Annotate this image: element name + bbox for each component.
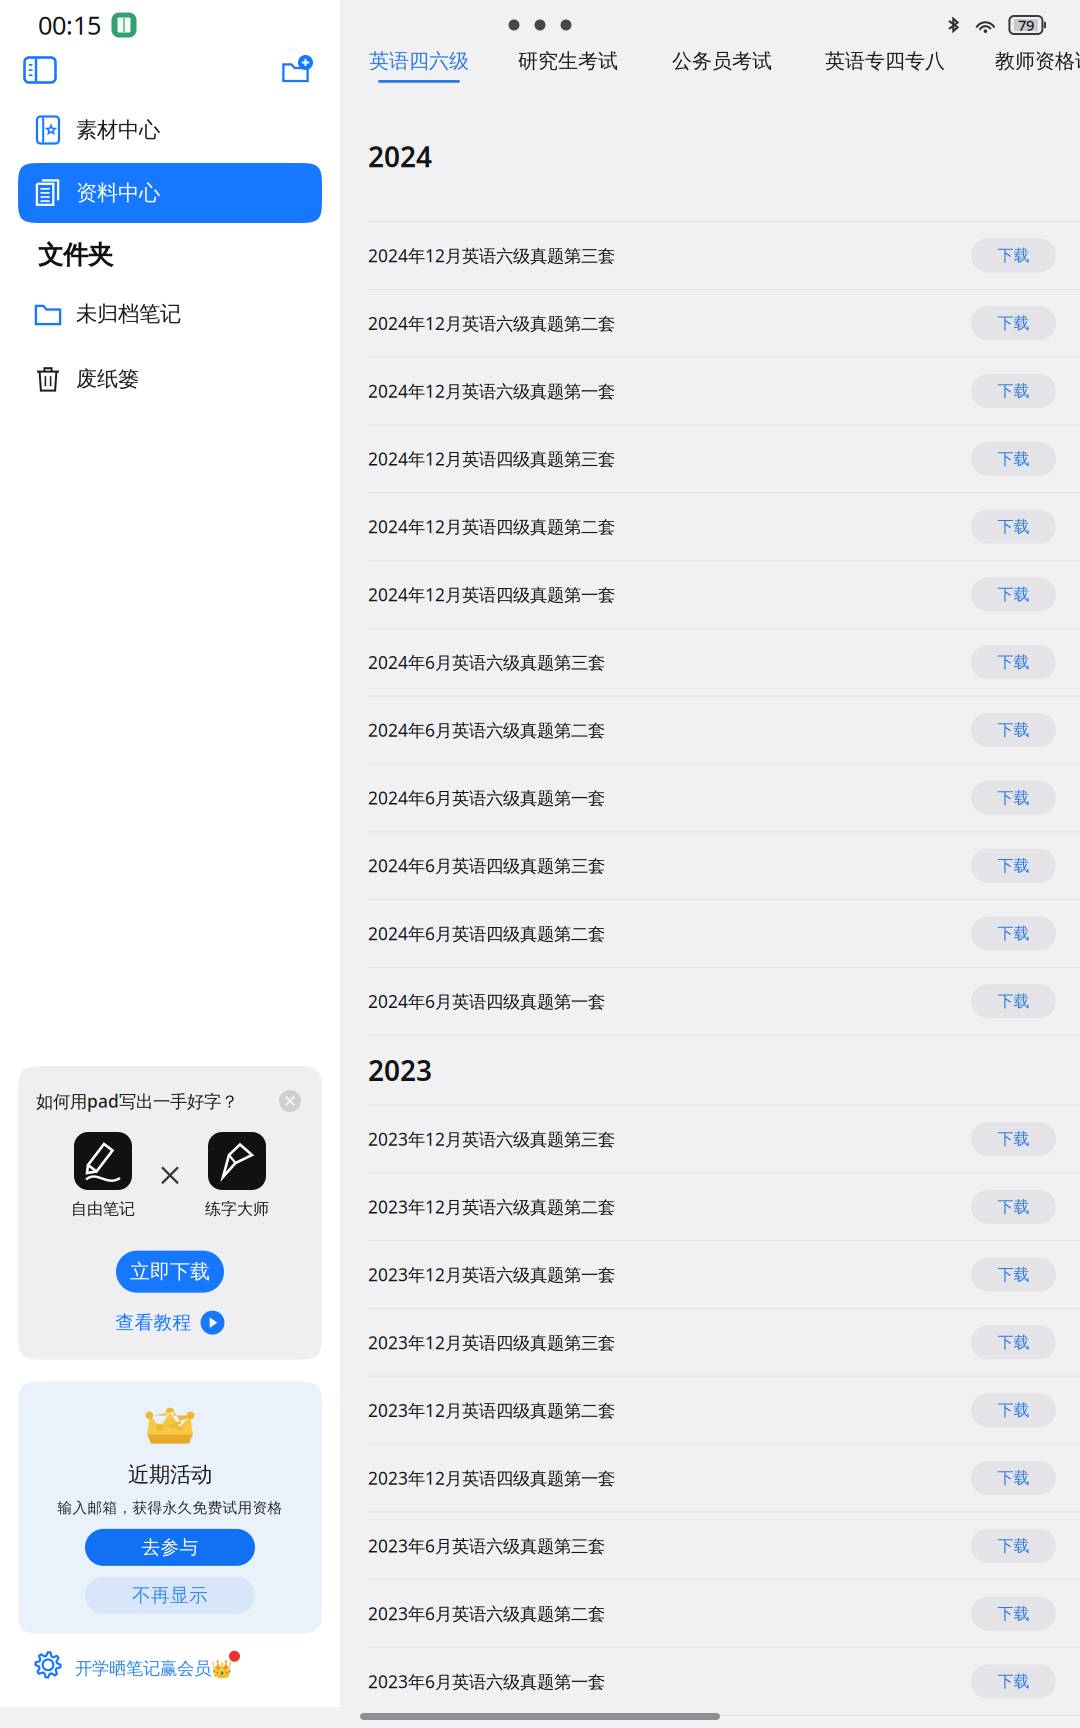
staticText: 下载 [997,246,1029,265]
staticText: 2024年6月英语六级真题第二套 [368,718,605,741]
button[interactable]: 不再显示 [85,1577,255,1614]
staticText: 2024年12月英语六级真题第一套 [368,379,615,402]
staticText: 下载 [997,1536,1029,1556]
button[interactable]: 2024年6月英语六级真题第三套 [368,629,1080,696]
button[interactable]: 资料中心 [18,163,322,223]
button[interactable]: 废纸篓 [18,351,322,407]
button[interactable]: 公务员考试 [672,48,772,92]
button[interactable]: 2024年12月英语六级真题第一套 [368,358,1080,424]
button[interactable]: 2023年12月英语四级真题第三套 [368,1309,1080,1376]
staticText: 下载 [997,720,1029,740]
staticText: 公务员考试 [672,49,772,73]
staticText: 立即下载 [130,1259,210,1284]
staticText: 未归档笔记 [76,301,181,327]
staticText: 2023年6月英语六级真题第二套 [368,1602,605,1625]
staticText: 英语专四专八 [825,49,945,73]
staticText: 下载 [997,1400,1029,1420]
staticText: 下载 [997,856,1029,875]
button[interactable]: 查看教程 [115,1307,224,1339]
staticText: 2023年6月英语六级真题第一套 [368,1670,605,1693]
staticText: 2023年12月英语四级真题第二套 [368,1399,615,1422]
staticText: 2024年6月英语六级真题第三套 [368,651,605,674]
button[interactable]: 2024年6月英语六级真题第二套 [368,697,1080,763]
staticText: 2023年12月英语四级真题第一套 [368,1466,615,1489]
button[interactable]: 2023年12月英语六级真题第一套 [368,1241,1080,1308]
staticText: 素材中心 [76,117,160,143]
staticText: 下载 [997,991,1029,1011]
staticText: 2023年12月英语六级真题第三套 [368,1127,615,1150]
staticText: 不再显示 [132,1584,208,1607]
button[interactable]: 2024年6月英语四级真题第三套 [368,832,1080,899]
staticText: 2024 [368,138,432,175]
button[interactable]: 2023年6月英语六级真题第一套 [368,1648,1080,1715]
staticText: 下载 [997,1672,1029,1691]
staticText: 2024年6月英语四级真题第三套 [368,854,605,877]
button[interactable]: 教师资格证 [995,48,1080,92]
staticText: 下载 [997,1129,1029,1149]
staticText: 文件夹 [38,239,113,270]
staticText: 下载 [997,788,1029,808]
staticText: 下载 [997,1265,1029,1284]
staticText: 下载 [997,1333,1029,1352]
staticText: 下载 [997,585,1029,604]
button[interactable]: 2024年12月英语四级真题第一套 [368,561,1080,628]
button[interactable]: 2024年12月英语六级真题第二套 [368,290,1080,357]
staticText: 2023年12月英语六级真题第一套 [368,1263,615,1286]
staticText: 下载 [997,924,1029,943]
button[interactable]: 去参与 [85,1529,255,1566]
staticText: 2024年12月英语四级真题第三套 [368,447,615,470]
button[interactable]: 2023年12月英语四级真题第二套 [368,1377,1080,1444]
staticText: 资料中心 [76,180,160,206]
button[interactable]: 新建文件夹 [272,50,320,90]
staticText: 下载 [997,652,1029,672]
staticText: 2023年12月英语四级真题第三套 [368,1331,615,1354]
staticText: 下载 [997,1197,1029,1217]
button[interactable]: 2024年6月英语四级真题第二套 [368,900,1080,967]
staticText: 2024年12月英语四级真题第二套 [368,515,615,538]
button[interactable]: 2023年6月英语六级真题第三套 [368,1512,1080,1579]
staticText: 2024年12月英语四级真题第一套 [368,583,615,606]
staticText: 下载 [997,449,1029,469]
staticText: 2023年6月英语六级真题第三套 [368,1534,605,1557]
staticText: 2024年6月英语四级真题第一套 [368,990,605,1013]
staticText: 英语四六级 [369,49,469,73]
staticText: 自由笔记 [71,1199,135,1219]
staticText: 查看教程 [115,1311,191,1334]
staticText: 下载 [997,1468,1029,1488]
staticText: 开学晒笔记赢会员👑 [75,1658,233,1679]
staticText: 下载 [997,313,1029,333]
button[interactable]: 英语专四专八 [825,48,945,92]
staticText: 2023 [368,1051,432,1089]
button[interactable]: 2024年12月英语六级真题第三套 [368,222,1080,289]
button[interactable]: 2024年12月英语四级真题第三套 [368,425,1080,492]
staticText: 79 [1018,15,1034,35]
button[interactable]: 关闭 [276,1087,304,1115]
button[interactable]: 2024年6月英语四级真题第一套 [368,968,1080,1035]
staticText: 练字大师 [205,1199,269,1219]
button[interactable]: 英语四六级 [369,48,469,92]
button[interactable]: 2024年12月英语四级真题第二套 [368,493,1080,560]
button[interactable]: 立即下载 [116,1251,224,1293]
button[interactable]: 素材中心 [18,100,322,160]
button[interactable]: 切换侧边栏 [16,50,64,90]
staticText: 下载 [997,1604,1029,1623]
button[interactable]: 2023年6月英语六级真题第二套 [368,1580,1080,1647]
staticText: 研究生考试 [518,49,618,73]
staticText: 废纸篓 [76,366,139,392]
button[interactable]: 研究生考试 [518,48,618,92]
button[interactable]: 2023年12月英语六级真题第二套 [368,1173,1080,1240]
staticText: 00:15 [38,8,101,42]
staticText: 2024年12月英语六级真题第三套 [368,244,615,267]
button[interactable]: 未归档笔记 [18,286,322,342]
staticText: 2024年12月英语六级真题第二套 [368,312,615,335]
button[interactable]: 2023年12月英语六级真题第三套 [368,1106,1080,1172]
staticText: 教师资格证 [995,49,1080,73]
staticText: 2024年6月英语六级真题第一套 [368,786,605,809]
staticText: 近期活动 [128,1462,212,1488]
staticText: 去参与 [141,1536,198,1559]
button[interactable]: 2023年12月英语四级真题第一套 [368,1445,1080,1511]
staticText: 如何用pad写出一手好字？ [36,1089,238,1112]
button[interactable]: 2024年6月英语六级真题第一套 [368,764,1080,831]
staticText: 下载 [997,517,1029,536]
button[interactable]: 开学晒笔记赢会员👑 [18,1642,322,1688]
